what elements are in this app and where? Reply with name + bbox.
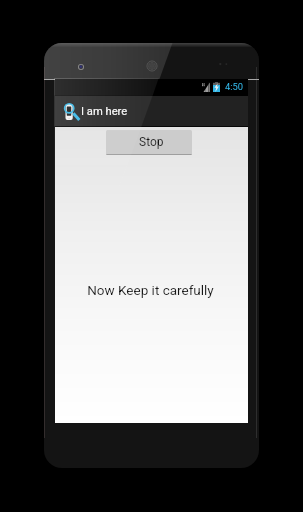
staticText: I am here (81, 105, 128, 118)
button[interactable]: I am here app icon (55, 96, 248, 126)
staticText: Now Keep it carefully (87, 282, 214, 298)
other: I am here app icon (63, 102, 80, 121)
staticText: Stop (139, 135, 164, 149)
button[interactable]: Stop (106, 130, 192, 155)
staticText: 4:50 (225, 81, 244, 92)
